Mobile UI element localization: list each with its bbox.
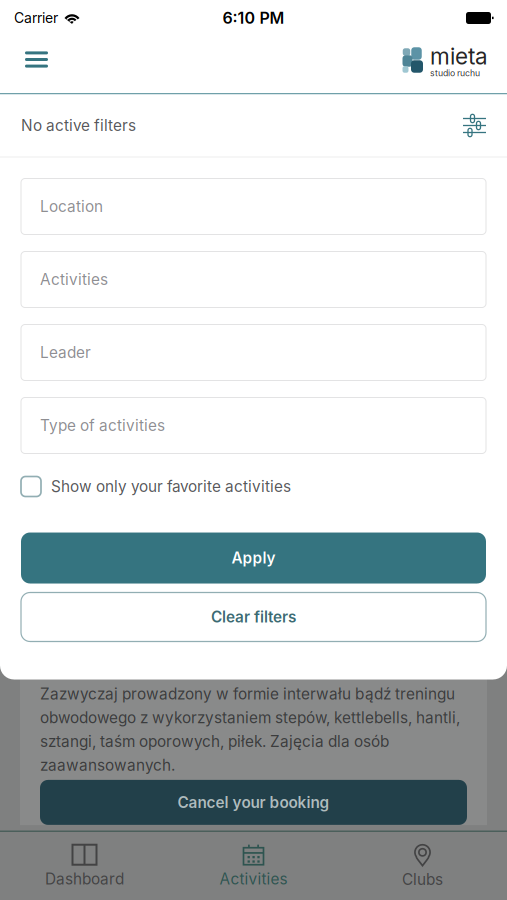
button[interactable]: Leader [21,324,486,380]
button[interactable]: Activities [21,251,486,307]
button[interactable]: Cancel your booking [40,780,467,825]
button[interactable]: Clubs [338,835,507,897]
staticText: Cancel your booking [177,793,329,812]
staticText: Apply [231,549,275,567]
staticText: Type of activities [40,416,165,435]
staticText: studio ruchu [430,68,480,78]
button[interactable]: Dashboard [0,835,169,897]
staticText: Clear filters [211,608,296,626]
staticText: sztangi, taśm oporowych, piłek. Zajęcia … [40,732,389,751]
staticText: Activities [40,270,108,289]
button[interactable]: Location [21,178,486,234]
staticText: Location [40,197,103,216]
staticText: Dashboard [45,870,124,888]
button[interactable]: Clear filters [21,592,486,641]
staticText: Zazwyczaj prowadzony w formie interwału … [40,685,455,703]
staticText: zaawansowanych. [40,756,175,774]
button[interactable]: Apply [21,532,486,583]
staticText: No active filters [21,116,136,135]
staticText: mieta [430,42,488,70]
staticText: Activities [219,870,287,888]
staticText: 6:10 PM [222,8,284,28]
button[interactable]: Show only your favorite activities [21,476,486,496]
staticText: Carrier [14,9,58,26]
button[interactable]: Activities [169,835,338,897]
button[interactable]: Edit filters [463,116,486,135]
button[interactable]: Type of activities [21,397,486,453]
staticText: Show only your favorite activities [51,477,291,496]
button[interactable]: Menu [13,43,60,75]
staticText: obwodowego z wykorzystaniem stepów, kett… [40,708,460,727]
staticText: Leader [40,343,91,362]
staticText: Clubs [402,870,443,889]
